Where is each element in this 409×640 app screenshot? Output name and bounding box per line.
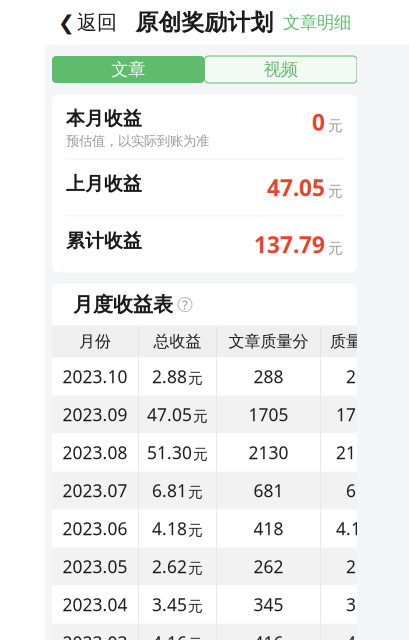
staticText: 元 [188,483,203,501]
staticText: 681 [253,479,283,502]
button[interactable]: 文章 [52,56,204,83]
staticText: 2023.04 [62,593,127,616]
staticText: 总收益 [153,332,201,351]
staticText: 262 [253,555,283,578]
button[interactable]: 视频 [204,56,357,83]
staticText: 416 [253,631,283,640]
staticText: 2023.07 [62,479,127,502]
staticText: 4.18 [336,517,371,540]
staticText: 6.8 [346,479,371,502]
staticText: 21.3 [336,441,371,464]
staticText: 2023.05 [62,555,127,578]
staticText: 6.81 [152,479,187,502]
staticText: 4.16 [152,631,187,640]
button[interactable]: 文章明细 [277,6,357,39]
staticText: 2023.03 [62,631,127,640]
staticText: ❮ [58,11,75,34]
button[interactable]: ❮ [52,4,123,41]
staticText: 元 [188,369,203,387]
staticText: 质量 [330,332,362,351]
staticText: 137.79 [254,229,325,259]
staticText: 文章明细 [283,12,351,33]
staticText: 3.4 [346,593,371,616]
staticText: 4.18 [152,517,187,540]
staticText: 月度收益表 [73,292,173,317]
staticText: 预估值，以实际到账为准 [66,133,209,149]
staticText: 2023.06 [62,517,127,540]
staticText: 2.8 [346,365,371,388]
staticText: 2023.08 [62,441,127,464]
staticText: 元 [193,407,208,425]
staticText: 累计收益 [66,229,142,252]
staticText: 元 [188,597,203,615]
staticText: 文章质量分 [228,332,308,351]
staticText: 47.05 [147,403,192,426]
staticText: 元 [188,635,203,640]
staticText: 元 [328,117,343,135]
staticText: 17.0 [336,403,371,426]
staticText: 418 [253,517,283,540]
staticText: 2.88 [152,365,187,388]
staticText: 元 [188,559,203,577]
button[interactable]: 说明 [178,297,192,311]
staticText: 2130 [248,441,288,464]
staticText: 288 [253,365,283,388]
staticText: 元 [328,182,343,200]
staticText: 返回 [77,10,117,35]
staticText: 2.62 [152,555,187,578]
staticText: 本月收益 [66,107,142,130]
staticText: 3.45 [152,593,187,616]
staticText: 元 [193,445,208,463]
staticText: 4.1 [346,631,371,640]
staticText: 元 [188,521,203,539]
staticText: 文章 [111,59,145,80]
staticText: 2023.10 [62,365,127,388]
staticText: 元 [328,239,343,257]
staticText: 51.30 [147,441,192,464]
staticText: 0 [312,107,325,137]
staticText: 视频 [264,59,298,80]
staticText: ? [182,296,188,313]
staticText: 345 [253,593,283,616]
staticText: 47.05 [267,172,325,202]
staticText: 原创奖励计划 [135,9,273,36]
staticText: 月份 [79,332,111,351]
staticText: 2.6 [346,555,371,578]
staticText: 2023.09 [62,403,127,426]
staticText: 上月收益 [66,172,142,195]
staticText: 1705 [248,403,288,426]
